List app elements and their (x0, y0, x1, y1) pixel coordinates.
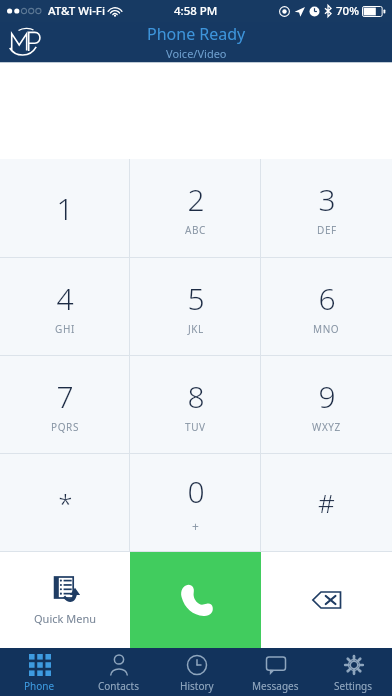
button[interactable]: 4 (0, 258, 130, 355)
staticText: 9 (318, 376, 336, 417)
staticText: ABC (185, 223, 207, 237)
button[interactable]: History (158, 648, 236, 696)
staticText: History (180, 679, 214, 693)
button[interactable]: 9 (261, 356, 392, 453)
staticText: 4:58 PM (174, 3, 218, 19)
button[interactable]: 8 (130, 356, 261, 453)
button[interactable]: 0 (130, 454, 261, 551)
staticText: # (318, 485, 335, 520)
staticText: Phone (24, 679, 55, 693)
staticText: Contacts (98, 679, 139, 693)
staticText: Voice/Video (166, 46, 227, 61)
button[interactable]: 7 (0, 356, 130, 453)
staticText: JKL (188, 322, 204, 336)
staticText: MNO (313, 322, 340, 336)
button[interactable]: # (261, 454, 392, 551)
staticText: Quick Menu (34, 611, 97, 626)
staticText: 70% (336, 3, 359, 19)
button[interactable]: Contacts (79, 648, 158, 696)
button[interactable]: 1 (0, 159, 130, 257)
staticText: 7 (56, 376, 74, 417)
button[interactable]: 5 (130, 258, 261, 355)
staticText: 6 (318, 278, 336, 319)
staticText: 1 (56, 188, 74, 229)
button[interactable]: Call (130, 552, 261, 648)
staticText: Phone Ready (147, 23, 246, 45)
button[interactable]: Settings (314, 648, 392, 696)
staticText: TUV (185, 420, 206, 434)
staticText: GHI (55, 322, 75, 336)
staticText: + (192, 518, 200, 534)
staticText: 4 (56, 278, 74, 319)
button[interactable]: Messages (236, 648, 314, 696)
button[interactable]: Phone (0, 648, 79, 696)
staticText: AT&T Wi-Fi (48, 3, 105, 19)
staticText: Messages (252, 679, 299, 693)
button[interactable]: Backspace (261, 552, 392, 648)
staticText: 0 (187, 471, 205, 512)
staticText: Settings (334, 679, 373, 693)
button[interactable]: * (0, 454, 130, 551)
staticText: WXYZ (312, 420, 341, 434)
staticText: 3 (318, 179, 336, 220)
staticText: 2 (187, 179, 205, 220)
staticText: * (58, 485, 73, 520)
button[interactable]: Quick Menu (0, 552, 130, 648)
staticText: 8 (187, 376, 205, 417)
button[interactable]: 6 (261, 258, 392, 355)
staticText: PQRS (51, 420, 79, 434)
staticText: DEF (317, 223, 337, 237)
staticText: 5 (187, 278, 205, 319)
button[interactable]: 2 (130, 159, 261, 257)
button[interactable]: 3 (261, 159, 392, 257)
